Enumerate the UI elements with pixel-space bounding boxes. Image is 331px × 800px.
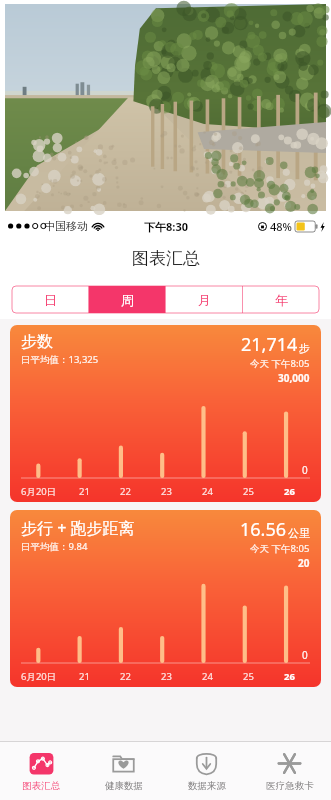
staticText: 健康数据 xyxy=(105,780,143,792)
staticText: 21 xyxy=(79,485,90,498)
staticText: 21,714 xyxy=(241,332,298,357)
staticText: 中国移动 xyxy=(44,219,88,233)
staticText: 日 xyxy=(44,292,57,308)
staticText: 22 xyxy=(120,670,131,683)
staticText: 26 xyxy=(284,485,295,498)
button[interactable]: 年 xyxy=(243,286,319,313)
staticText: 0 xyxy=(302,648,308,662)
staticText: 年 xyxy=(275,292,288,308)
staticText: 下午8:30 xyxy=(144,219,188,234)
staticText: 26 xyxy=(284,670,295,683)
staticText: 今天 下午8:05 xyxy=(250,357,310,370)
button[interactable]: 医疗急救卡 xyxy=(248,742,331,800)
staticText: 24 xyxy=(202,670,213,683)
staticText: 30,000 xyxy=(278,371,310,385)
staticText: 24 xyxy=(202,485,213,498)
button[interactable]: 健康数据 xyxy=(82,742,165,800)
button[interactable]: 图表汇总 xyxy=(0,742,82,800)
button[interactable]: 月 xyxy=(166,286,242,313)
staticText: 日平均值：9.84 xyxy=(21,540,88,553)
button[interactable]: 步数 xyxy=(10,325,321,502)
staticText: 步 xyxy=(299,341,310,355)
button[interactable]: 数据来源 xyxy=(165,742,248,800)
staticText: 21 xyxy=(79,670,90,683)
staticText: 48% xyxy=(270,219,292,234)
button[interactable]: 周 xyxy=(89,286,165,313)
staticText: 6月20日 xyxy=(21,485,57,498)
staticText: 图表汇总 xyxy=(132,248,200,269)
staticText: 23 xyxy=(161,670,172,683)
staticText: 25 xyxy=(243,670,254,683)
staticText: 日平均值：13,325 xyxy=(21,353,99,366)
staticText: 公里 xyxy=(288,526,310,540)
staticText: 22 xyxy=(120,485,131,498)
staticText: 16.56 xyxy=(240,517,287,542)
button[interactable]: 步行 + 跑步距离 xyxy=(10,510,321,687)
staticText: 25 xyxy=(243,485,254,498)
staticText: 23 xyxy=(161,485,172,498)
staticText: 步数 xyxy=(21,332,53,352)
staticText: 图表汇总 xyxy=(22,780,60,792)
staticText: 月 xyxy=(198,292,211,308)
staticText: 20 xyxy=(298,556,310,570)
staticText: 医疗急救卡 xyxy=(266,780,314,792)
staticText: 数据来源 xyxy=(188,780,226,792)
staticText: 步行 + 跑步距离 xyxy=(21,517,135,539)
staticText: 0 xyxy=(302,463,308,477)
staticText: 今天 下午8:05 xyxy=(250,542,310,555)
staticText: 6月20日 xyxy=(21,670,57,683)
staticText: 周 xyxy=(121,292,134,308)
button[interactable]: 日 xyxy=(12,286,88,313)
